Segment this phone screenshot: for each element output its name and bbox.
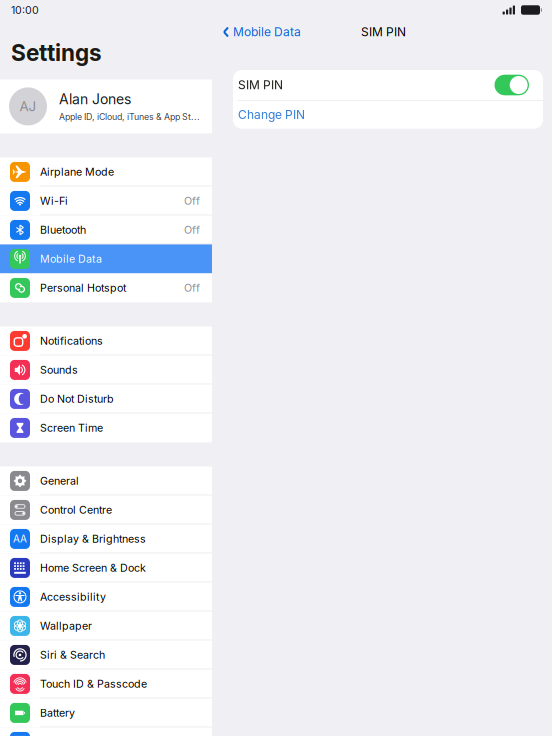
staticText: Off	[184, 281, 200, 294]
staticText: Battery	[40, 706, 75, 719]
staticText: Sounds	[40, 363, 78, 376]
button[interactable]: Wi-Fi	[0, 186, 212, 215]
button[interactable]: Wallpaper	[0, 611, 212, 640]
staticText: Personal Hotspot	[40, 281, 126, 294]
staticText: Wi-Fi	[40, 194, 68, 207]
button[interactable]: Sounds	[0, 355, 212, 384]
staticText: AJ	[19, 98, 36, 114]
staticText: General	[40, 474, 79, 487]
button[interactable]: AJ	[0, 79, 212, 133]
staticText: Settings	[11, 39, 102, 66]
button[interactable]: Bluetooth	[0, 215, 212, 244]
staticText: Off	[184, 223, 200, 236]
staticText: Accessibility	[40, 590, 106, 603]
button[interactable]: Battery	[0, 698, 212, 727]
button[interactable]: General	[0, 466, 212, 495]
staticText: Mobile Data	[233, 25, 301, 39]
staticText: Off	[184, 194, 200, 207]
staticText: Home Screen & Dock	[40, 561, 146, 574]
staticText: Touch ID & Passcode	[40, 677, 147, 690]
button[interactable]: Mobile Data	[212, 20, 309, 44]
staticText: AA	[13, 533, 27, 545]
staticText: Notifications	[40, 334, 103, 347]
staticText: Apple ID, iCloud, iTunes & App St...	[59, 112, 200, 122]
button[interactable]: Do Not Disturb	[0, 384, 212, 413]
button[interactable]: Touch ID & Passcode	[0, 669, 212, 698]
button[interactable]: Privacy	[0, 727, 212, 736]
staticText: Siri & Search	[40, 648, 105, 661]
button[interactable]: AA	[0, 524, 212, 553]
staticText: Mobile Data	[40, 252, 102, 265]
staticText: Change PIN	[238, 107, 305, 122]
button[interactable]: Accessibility	[0, 582, 212, 611]
button[interactable]: SIM PIN	[233, 70, 543, 100]
button[interactable]: Notifications	[0, 326, 212, 355]
staticText: Screen Time	[40, 421, 103, 434]
button[interactable]: Airplane Mode	[0, 157, 212, 186]
button[interactable]: Personal Hotspot	[0, 273, 212, 302]
button[interactable]: Control Centre	[0, 495, 212, 524]
staticText: Control Centre	[40, 503, 112, 516]
staticText: Bluetooth	[40, 223, 86, 236]
button[interactable]: Mobile Data	[0, 244, 212, 273]
staticText: 10:00	[11, 3, 39, 16]
staticText: Do Not Disturb	[40, 392, 114, 405]
button[interactable]: Siri & Search	[0, 640, 212, 669]
button[interactable]: Screen Time	[0, 413, 212, 442]
staticText: SIM PIN	[361, 25, 406, 39]
button[interactable]: Change PIN	[233, 101, 543, 129]
staticText: Airplane Mode	[40, 165, 114, 178]
staticText: Display & Brightness	[40, 532, 146, 545]
staticText: Wallpaper	[40, 619, 92, 632]
button[interactable]: Home Screen & Dock	[0, 553, 212, 582]
staticText: Alan Jones	[59, 91, 131, 107]
staticText: SIM PIN	[238, 78, 283, 92]
